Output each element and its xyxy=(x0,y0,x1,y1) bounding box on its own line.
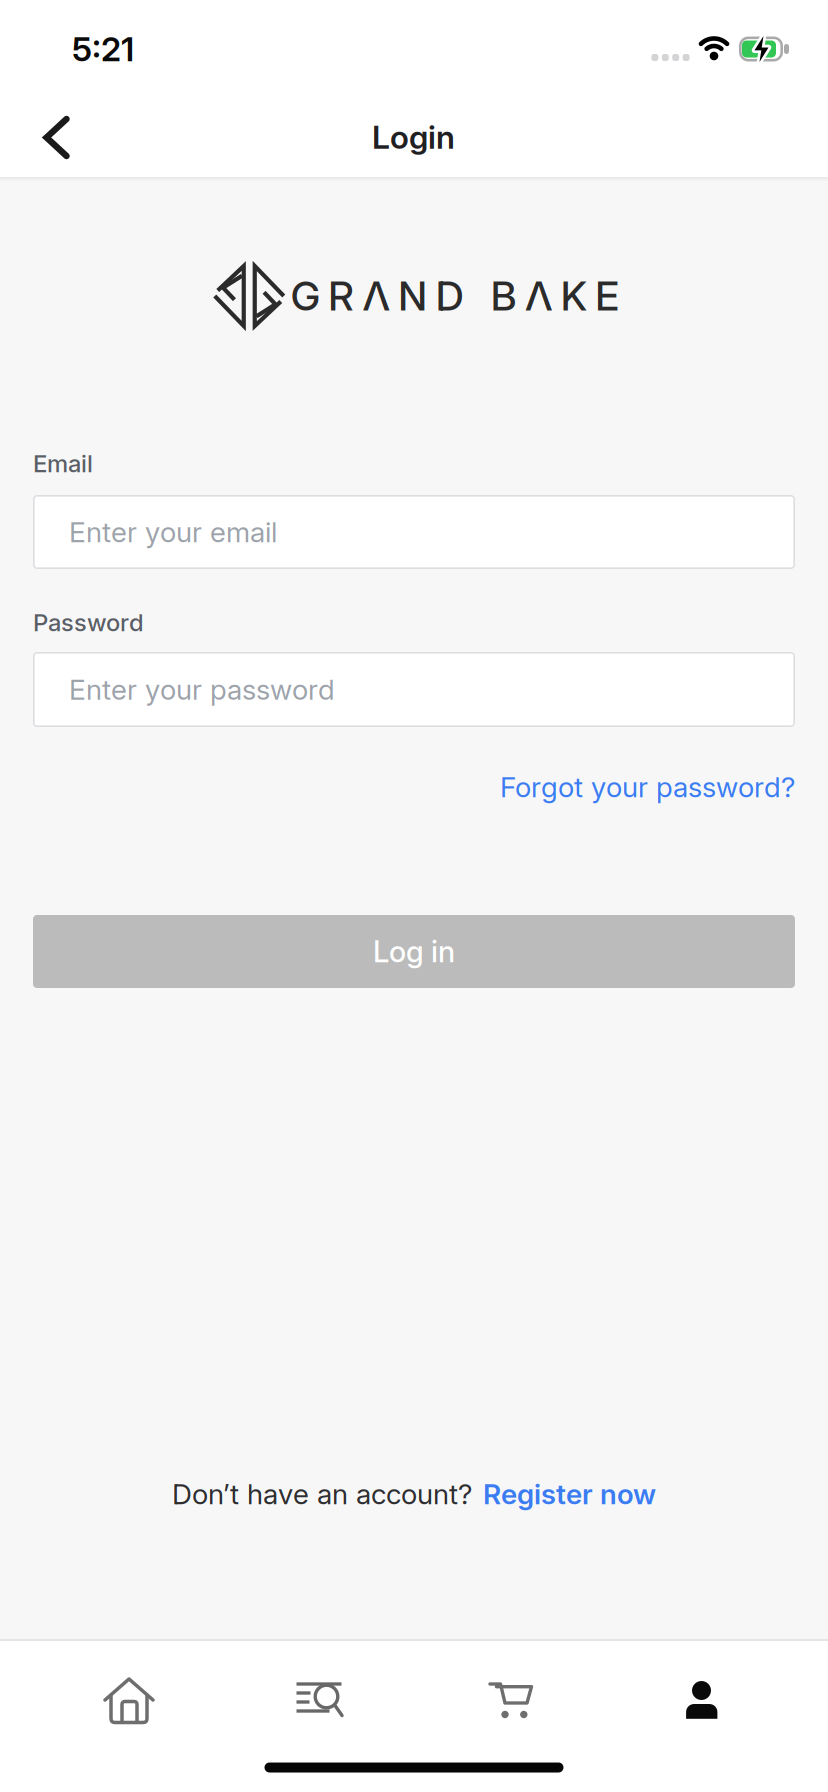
staticText: Password xyxy=(33,608,144,637)
staticText: Register now xyxy=(483,1477,656,1510)
staticText: Λ xyxy=(525,272,552,320)
button[interactable] xyxy=(34,1648,224,1754)
button[interactable]: Enter your password xyxy=(33,652,795,727)
staticText: Login xyxy=(372,118,455,156)
staticText: B xyxy=(491,272,517,320)
staticText: Don’t have an account? xyxy=(172,1477,472,1510)
staticText: K xyxy=(561,272,587,320)
staticText: Enter your password xyxy=(69,673,335,706)
button[interactable] xyxy=(606,1647,796,1753)
staticText: Log in xyxy=(373,934,455,969)
staticText: N xyxy=(398,272,427,320)
button[interactable] xyxy=(415,1646,605,1752)
staticText: 5:21 xyxy=(72,29,134,69)
staticText: G xyxy=(291,272,320,320)
staticText: Λ xyxy=(363,272,390,320)
button[interactable]: Forgot your password? xyxy=(500,770,795,803)
button[interactable] xyxy=(27,102,85,174)
staticText: Enter your email xyxy=(69,515,277,548)
staticText: E xyxy=(595,272,619,320)
button[interactable]: Enter your email xyxy=(33,495,795,569)
button[interactable]: Log in xyxy=(33,915,795,988)
staticText: Forgot your password? xyxy=(500,770,795,803)
button[interactable]: Register now xyxy=(483,1477,656,1510)
button[interactable] xyxy=(224,1645,414,1751)
staticText: D xyxy=(436,272,464,320)
staticText: R xyxy=(328,272,354,320)
staticText: Email xyxy=(33,449,93,478)
